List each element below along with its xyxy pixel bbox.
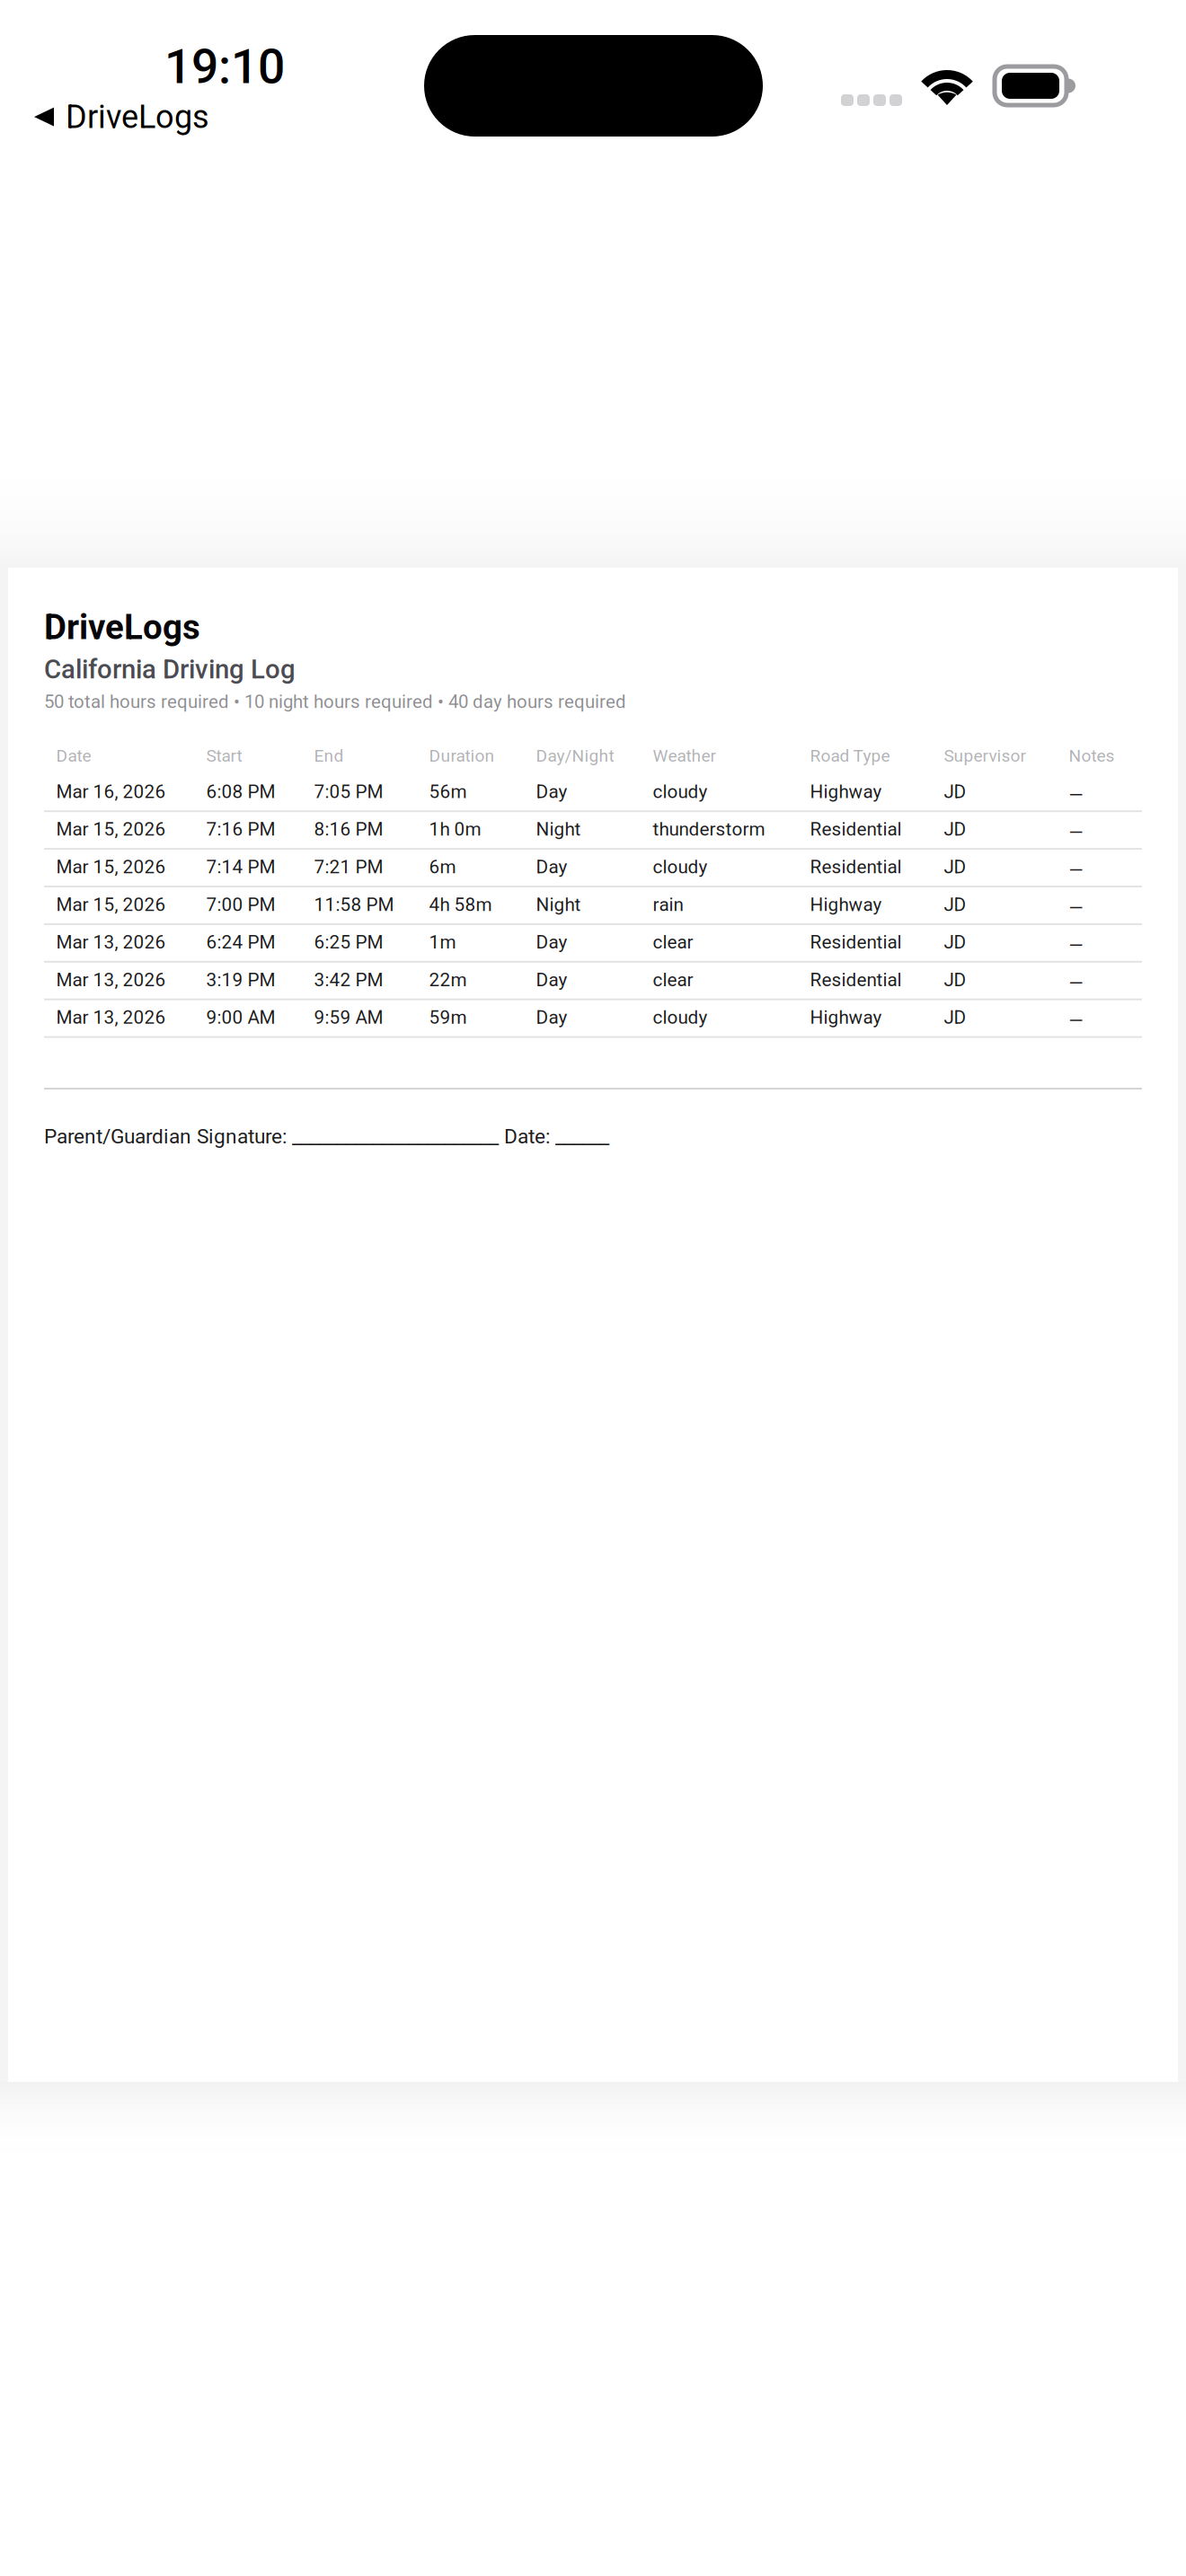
staticText: JD [944, 818, 966, 840]
staticText: 6:24 PM [206, 931, 275, 953]
staticText: Mar 13, 2026 [56, 1007, 166, 1028]
staticText: 6m [429, 856, 456, 878]
staticText: DriveLogs [66, 98, 209, 136]
staticText: Mar 16, 2026 [56, 781, 166, 803]
staticText: — [1069, 897, 1083, 919]
staticText: Residential [810, 818, 902, 840]
staticText: 8:16 PM [314, 818, 383, 840]
staticText: cloudy [653, 856, 708, 878]
staticText: Mar 15, 2026 [56, 856, 166, 878]
staticText: Road Type [810, 746, 890, 766]
staticText: 9:59 AM [314, 1007, 383, 1028]
staticText: 50 total hours required • 10 night hours… [44, 691, 626, 713]
staticText: — [1069, 784, 1083, 806]
staticText: cloudy [653, 1007, 708, 1028]
staticText: California Driving Log [44, 654, 296, 685]
staticText: Residential [810, 856, 902, 878]
staticText: Residential [810, 931, 902, 953]
staticText: — [1069, 973, 1083, 994]
staticText: Highway [810, 1007, 882, 1028]
staticText: 6:08 PM [206, 781, 275, 803]
staticText: clear [653, 931, 693, 953]
staticText: Night [536, 818, 581, 840]
staticText: Day [536, 969, 567, 991]
staticText: 22m [429, 969, 467, 991]
staticText: 7:14 PM [206, 856, 275, 878]
staticText: Day [536, 856, 567, 878]
staticText: 7:05 PM [314, 781, 383, 803]
staticText: 6:25 PM [314, 931, 383, 953]
staticText: 7:16 PM [206, 818, 275, 840]
staticText: thunderstorm [653, 818, 765, 840]
staticText: DriveLogs [44, 607, 200, 648]
staticText: 59m [429, 1007, 467, 1028]
staticText: 1h 0m [429, 818, 481, 840]
staticText: 3:42 PM [314, 969, 383, 991]
staticText: Highway [810, 781, 882, 803]
staticText: — [1069, 1010, 1083, 1032]
staticText: JD [944, 1007, 966, 1028]
staticText: 4h 58m [429, 894, 492, 915]
staticText: JD [944, 856, 966, 878]
staticText: Night [536, 894, 581, 915]
staticText: cloudy [653, 781, 708, 803]
staticText: JD [944, 781, 966, 803]
staticText: Mar 13, 2026 [56, 931, 166, 953]
staticText: Day [536, 1007, 567, 1028]
staticText: Parent/Guardian Signature: _____________… [44, 1125, 609, 1149]
staticText: — [1069, 860, 1083, 881]
staticText: clear [653, 969, 693, 991]
staticText: Residential [810, 969, 902, 991]
staticText: Day [536, 931, 567, 953]
staticText: 56m [429, 781, 467, 803]
staticText: Duration [429, 746, 495, 766]
staticText: Notes [1069, 746, 1115, 766]
staticText: JD [944, 931, 966, 953]
staticText: rain [653, 894, 683, 915]
staticText: 9:00 AM [206, 1007, 275, 1028]
staticText: Mar 15, 2026 [56, 818, 166, 840]
staticText: Supervisor [944, 746, 1026, 766]
staticText: — [1069, 822, 1083, 844]
staticText: Highway [810, 894, 882, 915]
staticText: Start [206, 746, 242, 766]
staticText: Date [56, 746, 91, 766]
staticText: JD [944, 969, 966, 991]
staticText: JD [944, 894, 966, 915]
staticText: End [314, 746, 344, 766]
staticText: — [1069, 935, 1083, 957]
staticText: Day [536, 781, 567, 803]
staticText: 19:10 [164, 39, 285, 95]
staticText: Mar 13, 2026 [56, 969, 166, 991]
staticText: 3:19 PM [206, 969, 275, 991]
staticText: Weather [653, 746, 716, 766]
button[interactable]: Back to DriveLogs [0, 0, 209, 136]
staticText: 7:21 PM [314, 856, 383, 878]
staticText: Mar 15, 2026 [56, 894, 166, 915]
staticText: 1m [429, 931, 456, 953]
staticText: 7:00 PM [206, 894, 275, 915]
staticText: 11:58 PM [314, 894, 394, 915]
staticText: Day/Night [536, 746, 614, 766]
